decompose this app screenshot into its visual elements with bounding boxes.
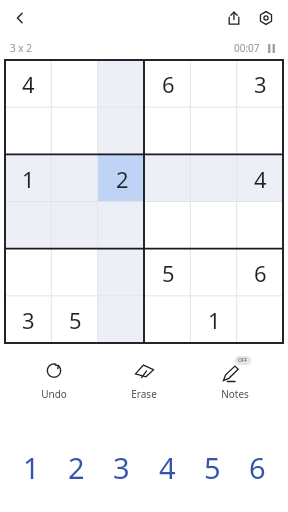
staticText: 2	[116, 164, 129, 194]
staticText: 3	[22, 305, 35, 335]
staticText: 2	[68, 448, 85, 487]
staticText: 4	[22, 69, 35, 99]
button[interactable]: Back	[4, 2, 36, 34]
staticText: OFF	[238, 357, 248, 364]
button[interactable]: 6	[237, 443, 277, 491]
staticText: Undo	[41, 387, 67, 401]
staticText: 3	[113, 448, 130, 487]
staticText: Notes	[221, 387, 249, 401]
staticText: 5	[204, 448, 221, 487]
staticText: 5	[69, 305, 82, 335]
staticText: 3 x 2	[10, 41, 32, 55]
button[interactable]: 3	[101, 443, 141, 491]
staticText: 1	[208, 305, 221, 335]
staticText: Erase	[131, 387, 157, 401]
button[interactable]: 5	[192, 443, 232, 491]
staticText: 5	[162, 258, 175, 288]
staticText: 1	[23, 448, 40, 487]
staticText: 6	[254, 258, 267, 288]
button[interactable]: Settings	[250, 2, 282, 34]
button[interactable]: Pause	[264, 41, 278, 55]
button[interactable]: 2	[56, 443, 96, 491]
button[interactable]: Erase	[107, 355, 181, 401]
staticText: 6	[249, 448, 266, 487]
button[interactable]: 4	[147, 443, 187, 491]
button[interactable]: Undo	[17, 355, 91, 401]
staticText: 00:07	[234, 41, 260, 55]
button[interactable]: 1	[11, 443, 51, 491]
button[interactable]: 4	[5, 60, 283, 343]
staticText: 4	[159, 448, 176, 487]
button[interactable]: OFF	[198, 355, 272, 401]
staticText: 1	[22, 164, 35, 194]
staticText: 3	[254, 69, 267, 99]
staticText: 6	[162, 69, 175, 99]
button[interactable]: Share	[218, 2, 250, 34]
staticText: 4	[254, 164, 267, 194]
